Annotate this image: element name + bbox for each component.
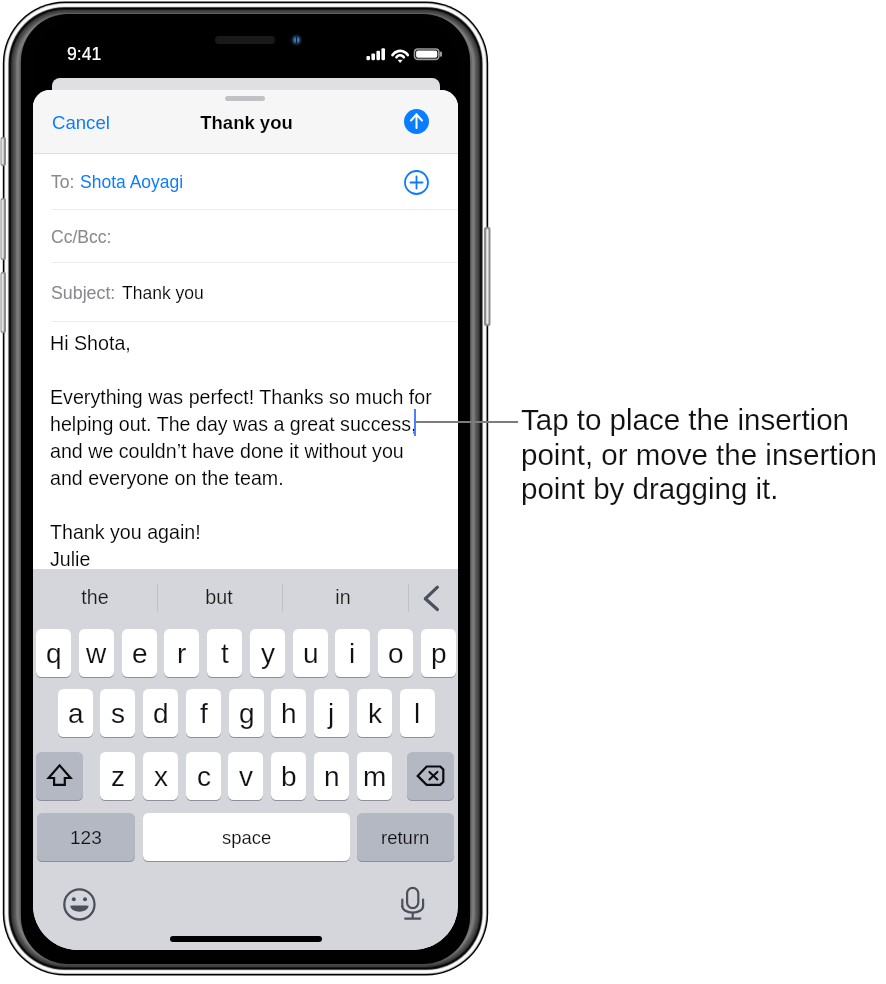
button[interactable]: space (143, 813, 350, 861)
staticText: p (431, 638, 447, 669)
staticText: To: (51, 172, 75, 192)
staticText: f (200, 698, 208, 729)
staticText: i (349, 638, 356, 669)
staticText: e (132, 638, 148, 669)
button[interactable]: Subject field (33, 263, 458, 320)
staticText: space (222, 827, 272, 848)
staticText: n (324, 761, 340, 792)
button[interactable]: i (335, 629, 370, 677)
button[interactable]: c (186, 752, 221, 800)
button[interactable]: a (58, 689, 93, 737)
staticText: Hi Shota, Everything was perfect! Thanks… (50, 332, 432, 570)
button[interactable]: j (314, 689, 349, 737)
button[interactable]: o (378, 629, 413, 677)
button[interactable]: Cancel (42, 103, 120, 141)
staticText: u (303, 638, 319, 669)
staticText: Tap to place the insertion point, or mov… (521, 403, 886, 505)
button[interactable]: Send (404, 109, 429, 134)
button[interactable]: n (314, 752, 349, 800)
staticText: x (154, 761, 168, 792)
staticText: o (388, 638, 404, 669)
button[interactable]: Dictate (400, 884, 426, 922)
staticText: q (46, 638, 62, 669)
staticText: m (363, 761, 387, 792)
staticText: 123 (70, 827, 102, 848)
button[interactable]: Backspace (407, 752, 454, 800)
button[interactable]: return (357, 813, 454, 861)
staticText: the (81, 586, 109, 608)
button[interactable]: Emoji (63, 888, 96, 921)
button[interactable]: 123 (37, 813, 135, 861)
button[interactable]: y (250, 629, 285, 677)
button[interactable]: r (164, 629, 199, 677)
button[interactable]: Cc Bcc field (33, 211, 458, 262)
button[interactable]: d (143, 689, 178, 737)
button[interactable]: k (357, 689, 392, 737)
staticText: j (328, 698, 335, 729)
staticText: Thank you (200, 112, 293, 133)
button[interactable]: q (36, 629, 71, 677)
staticText: y (261, 638, 275, 669)
staticText: w (86, 638, 107, 669)
button[interactable]: t (207, 629, 242, 677)
staticText: z (111, 761, 125, 792)
button[interactable]: h (271, 689, 306, 737)
staticText: Thank you (122, 283, 204, 303)
button[interactable]: g (229, 689, 264, 737)
staticText: Cc/Bcc: (51, 227, 112, 247)
staticText: in (335, 586, 351, 608)
button[interactable]: z (100, 752, 135, 800)
staticText: a (68, 698, 84, 729)
staticText: g (239, 698, 255, 729)
button[interactable]: m (357, 752, 392, 800)
button[interactable]: f (186, 689, 221, 737)
staticText: l (414, 698, 421, 729)
staticText: k (368, 698, 382, 729)
button[interactable]: l (400, 689, 435, 737)
staticText: h (281, 698, 297, 729)
staticText: but (205, 586, 233, 608)
staticText: 9:41 (67, 44, 102, 64)
button[interactable]: p (421, 629, 456, 677)
button[interactable]: b (271, 752, 306, 800)
button[interactable]: u (293, 629, 328, 677)
staticText: c (197, 761, 211, 792)
staticText: r (177, 638, 187, 669)
staticText: v (239, 761, 253, 792)
button[interactable]: Add recipient (404, 170, 429, 195)
staticText: s (111, 698, 125, 729)
button[interactable]: To field (33, 154, 458, 210)
button[interactable]: v (228, 752, 263, 800)
staticText: Cancel (52, 112, 110, 133)
button[interactable]: s (100, 689, 135, 737)
staticText: b (281, 761, 297, 792)
button[interactable]: w (79, 629, 114, 677)
button[interactable]: x (143, 752, 178, 800)
button[interactable]: e (122, 629, 157, 677)
staticText: t (221, 638, 229, 669)
staticText: d (153, 698, 169, 729)
button[interactable]: Message body (33, 322, 458, 569)
staticText: Subject: (51, 283, 116, 303)
button[interactable]: Hide suggestions (418, 582, 444, 614)
staticText: return (381, 827, 430, 848)
staticText: Shota Aoyagi (80, 172, 184, 192)
button[interactable]: Shift (36, 752, 83, 800)
